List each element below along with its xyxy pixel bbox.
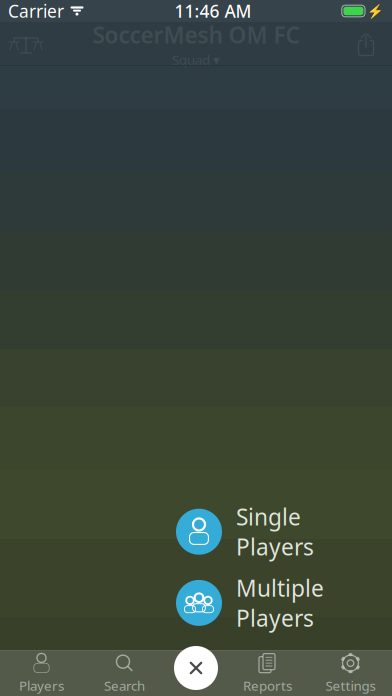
staticText: Carrier [8, 0, 64, 22]
button[interactable]: Single Players [172, 502, 382, 562]
staticText: ⚡ [367, 3, 384, 19]
staticText: SoccerMesh OM FC [92, 20, 299, 50]
staticText: Players [19, 677, 64, 694]
button[interactable]: Compare [0, 22, 52, 66]
staticText: Search [104, 677, 145, 694]
staticText: Multiple Players [236, 573, 324, 633]
staticText: Settings [325, 677, 375, 694]
staticText: 11:46 AM [174, 0, 251, 22]
staticText: Reports [243, 677, 292, 694]
button[interactable]: Multiple Players [172, 573, 382, 633]
button[interactable]: Share [340, 22, 392, 66]
button[interactable]: Players [0, 650, 83, 696]
button[interactable]: Close menu [174, 646, 218, 690]
button[interactable]: Reports [226, 650, 309, 696]
button[interactable]: Search [83, 650, 166, 696]
button[interactable]: Settings [309, 650, 392, 696]
staticText: Squad ▾ [172, 51, 220, 68]
staticText: Single Players [236, 502, 314, 562]
button[interactable]: Close [166, 650, 226, 696]
